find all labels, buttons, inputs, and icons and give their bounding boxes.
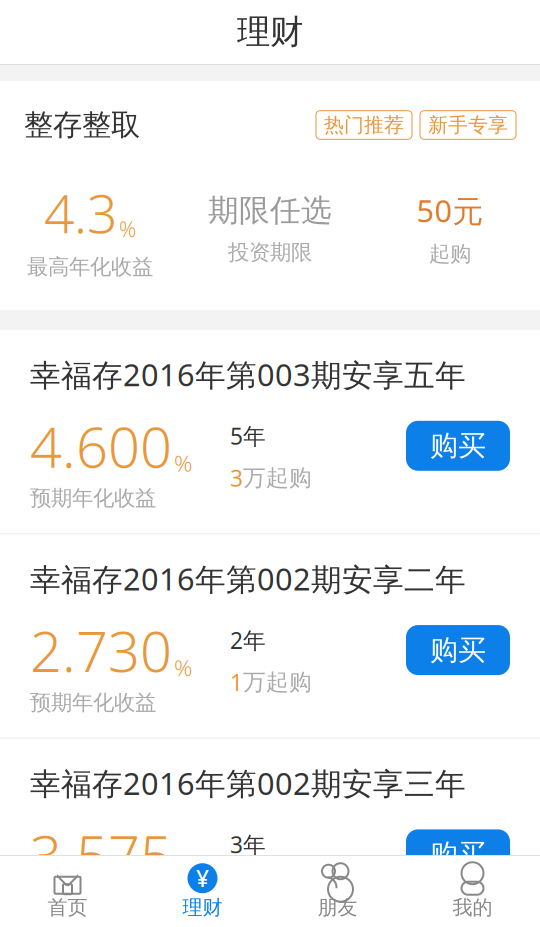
button[interactable]: 购买 xyxy=(406,421,510,471)
staticText: 4.3 xyxy=(44,177,117,248)
button[interactable]: 理财 xyxy=(135,857,270,926)
staticText: 热门推荐 xyxy=(324,113,404,137)
staticText: 理财 xyxy=(182,895,222,920)
staticText: 朋友 xyxy=(317,895,357,920)
staticText: 期限任选 xyxy=(208,192,332,229)
staticText: 幸福存2016年第002期安享三年 xyxy=(30,763,466,803)
staticText: 3年 xyxy=(230,829,266,859)
button[interactable]: 首页 xyxy=(0,857,135,926)
staticText: ¥ xyxy=(196,863,209,893)
staticText: 预期年化收益 xyxy=(30,689,156,716)
staticText: 投资期限 xyxy=(228,239,312,265)
staticText: 预期年化收益 xyxy=(30,894,156,920)
staticText: 2年 xyxy=(230,625,266,655)
button[interactable]: 购买 xyxy=(406,829,510,879)
button[interactable]: 我的 xyxy=(405,857,540,926)
staticText: 5年 xyxy=(230,421,266,451)
staticText: % xyxy=(174,652,192,682)
staticText: 最高年化收益 xyxy=(27,254,153,280)
staticText: 3 xyxy=(230,463,243,493)
staticText: % xyxy=(174,448,192,478)
staticText: 2.730 xyxy=(30,613,172,687)
staticText: 50元 xyxy=(416,190,483,231)
staticText: 3.575 xyxy=(30,817,172,892)
staticText: 万起购 xyxy=(243,464,312,492)
staticText: 购买 xyxy=(430,837,486,872)
button[interactable]: 购买 xyxy=(406,625,510,675)
staticText: 幸福存2016年第003期安享五年 xyxy=(30,354,466,395)
staticText: % xyxy=(119,215,136,243)
staticText: 整存整取 xyxy=(24,107,140,143)
staticText: 起购 xyxy=(429,241,471,267)
staticText: 购买 xyxy=(430,429,486,463)
staticText: 4.600 xyxy=(30,409,172,483)
staticText: 首页 xyxy=(47,895,87,920)
staticText: 新手专享 xyxy=(428,113,508,137)
button[interactable]: 朋友 xyxy=(270,857,405,926)
staticText: % xyxy=(174,857,192,887)
staticText: 购买 xyxy=(430,633,486,667)
staticText: 幸福存2016年第002期安享二年 xyxy=(30,558,466,599)
staticText: 我的 xyxy=(452,895,492,920)
staticText: 1 xyxy=(230,667,243,697)
staticText: 预期年化收益 xyxy=(30,485,156,511)
button[interactable]: 热门推荐 xyxy=(316,111,412,139)
button[interactable]: 新手专享 xyxy=(420,111,516,139)
staticText: 理财 xyxy=(237,11,303,52)
staticText: 万起购 xyxy=(243,668,312,696)
